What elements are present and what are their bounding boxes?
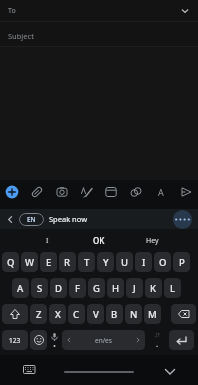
button[interactable]	[173, 210, 192, 229]
button[interactable]: R	[59, 252, 76, 272]
button[interactable]	[5, 185, 19, 199]
staticText: R	[64, 256, 71, 269]
staticText: U	[121, 256, 129, 269]
staticText: H	[112, 282, 120, 295]
button[interactable]: To	[0, 0, 198, 21]
staticText: M	[148, 308, 157, 321]
button[interactable]: T	[78, 252, 95, 272]
button[interactable]	[17, 358, 41, 382]
button[interactable]	[30, 185, 44, 199]
staticText: T	[84, 256, 90, 269]
staticText: L	[170, 282, 176, 295]
staticText: J	[133, 282, 136, 295]
staticText: K	[150, 282, 157, 295]
button[interactable]: C	[68, 304, 85, 324]
button[interactable]: H	[107, 278, 124, 298]
button[interactable]: en/es	[62, 330, 145, 350]
staticText: Subject	[8, 31, 34, 41]
staticText: F	[75, 282, 81, 295]
staticText: G	[93, 282, 100, 295]
staticText: 123	[9, 336, 21, 345]
button[interactable]: V	[87, 304, 104, 324]
staticText: .	[156, 338, 159, 349]
button[interactable]: S	[31, 278, 48, 298]
staticText: O	[159, 256, 167, 269]
button[interactable]: P	[173, 252, 190, 272]
staticText: I	[46, 236, 49, 246]
staticText: X	[55, 308, 61, 321]
staticText: ,!?	[155, 332, 160, 338]
button[interactable]: Hey	[132, 229, 172, 252]
staticText: D	[55, 282, 62, 295]
button[interactable]	[55, 185, 69, 199]
button[interactable]	[171, 304, 196, 324]
button[interactable]: E	[40, 252, 57, 272]
button[interactable]	[2, 304, 28, 324]
button[interactable]: F	[69, 278, 86, 298]
button[interactable]: G	[88, 278, 105, 298]
button[interactable]: A	[12, 278, 29, 298]
button[interactable]: EN	[19, 213, 44, 226]
staticText: S	[37, 282, 43, 295]
button[interactable]: K	[145, 278, 162, 298]
staticText: Hey	[146, 236, 159, 246]
button[interactable]: 123	[2, 330, 28, 350]
button[interactable]: M	[144, 304, 161, 324]
staticText: EN	[27, 215, 36, 224]
button[interactable]: Z	[30, 304, 47, 324]
staticText: V	[93, 308, 99, 321]
button[interactable]	[30, 330, 47, 350]
staticText: E	[46, 256, 52, 269]
button[interactable]: ,!?	[147, 330, 167, 350]
staticText: en/es	[95, 336, 112, 345]
staticText: N	[130, 308, 138, 321]
button[interactable]: N	[125, 304, 142, 324]
button[interactable]: W	[21, 252, 38, 272]
staticText: P	[179, 256, 185, 269]
button[interactable]: J	[126, 278, 143, 298]
button[interactable]: O	[154, 252, 171, 272]
button[interactable]: U	[116, 252, 133, 272]
button[interactable]: Subject	[0, 22, 198, 46]
button[interactable]: B	[106, 304, 123, 324]
button[interactable]: I	[27, 229, 67, 252]
button[interactable]: OK	[79, 229, 119, 252]
staticText: Z	[36, 308, 42, 321]
button[interactable]	[179, 185, 193, 199]
button[interactable]: Y	[97, 252, 114, 272]
staticText: Y	[103, 256, 109, 269]
button[interactable]: I	[135, 252, 152, 272]
staticText: I	[142, 256, 146, 269]
button[interactable]	[158, 360, 182, 384]
staticText: Speak now	[49, 214, 88, 224]
staticText: OK	[93, 235, 105, 246]
button[interactable]: X	[49, 304, 66, 324]
button[interactable]	[169, 330, 194, 350]
button[interactable]	[6, 215, 15, 224]
staticText: C	[73, 308, 80, 321]
button[interactable]	[80, 185, 94, 199]
button[interactable]: Q	[2, 252, 19, 272]
button[interactable]	[49, 330, 60, 350]
staticText: A	[158, 186, 164, 198]
staticText: B	[111, 308, 118, 321]
staticText: To	[8, 6, 16, 16]
staticText: A	[17, 282, 24, 295]
button[interactable]	[129, 185, 143, 199]
button[interactable]	[104, 185, 118, 199]
button[interactable]: L	[164, 278, 181, 298]
button[interactable]: A	[154, 185, 168, 199]
button[interactable]: D	[50, 278, 67, 298]
staticText: Q	[7, 256, 15, 269]
staticText: W	[25, 256, 34, 269]
